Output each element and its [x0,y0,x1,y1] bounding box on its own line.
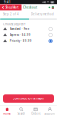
staticText: Step 2 of 4 [3,12,19,16]
staticText: Priority · $9.99 [10,39,32,43]
button[interactable]: Home [0,107,14,115]
staticText: Home [3,112,11,115]
staticText: ShopMart [5,6,18,9]
button[interactable]: CONTINUE TO PAYMENT [3,94,54,103]
staticText: Orders [31,112,40,115]
button[interactable]: Account [43,107,57,115]
staticText: Standard · Free [10,27,30,31]
button[interactable]: Priority · $9.99 [0,38,57,44]
staticText: Express · $4.99 [10,33,31,37]
button[interactable]: Express · $4.99 [0,32,57,38]
button[interactable]: ShopMart home [0,4,21,10]
button[interactable]: Standard · Free [0,26,57,32]
button[interactable]: Search [14,107,28,115]
staticText: CHOOSE DELIVERY [3,22,26,26]
staticText: 9:41 [4,0,11,4]
staticText: Checkout [23,6,37,9]
staticText: CONTINUE TO PAYMENT [12,97,44,100]
staticText: Search [17,112,25,115]
button[interactable]: Orders [28,107,43,115]
staticText: Delivery method [31,12,54,16]
staticText: Account [44,112,55,115]
